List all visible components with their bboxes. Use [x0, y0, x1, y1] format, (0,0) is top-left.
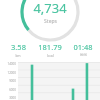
staticText: 3000 [9, 96, 16, 100]
staticText: 4,734 [33, 0, 67, 17]
button[interactable]: Activity chart [0, 62, 100, 100]
staticText: 时间 [80, 53, 87, 57]
staticText: Steps [44, 18, 57, 25]
staticText: 9000 [9, 79, 16, 83]
staticText: 6000 [9, 88, 16, 92]
staticText: 3.58 [11, 42, 26, 52]
staticText: 12000 [7, 71, 16, 75]
button[interactable]: 4,734 [0, 0, 100, 38]
staticText: kcal [47, 53, 54, 58]
staticText: 181.79 [38, 42, 62, 52]
staticText: km [15, 53, 21, 58]
staticText: 01:48 [73, 42, 93, 52]
button[interactable]: 3.58 [3, 42, 33, 57]
button[interactable]: 01:48 [68, 42, 98, 56]
button[interactable]: 181.79 [35, 42, 65, 57]
staticText: 14000 [7, 62, 16, 66]
